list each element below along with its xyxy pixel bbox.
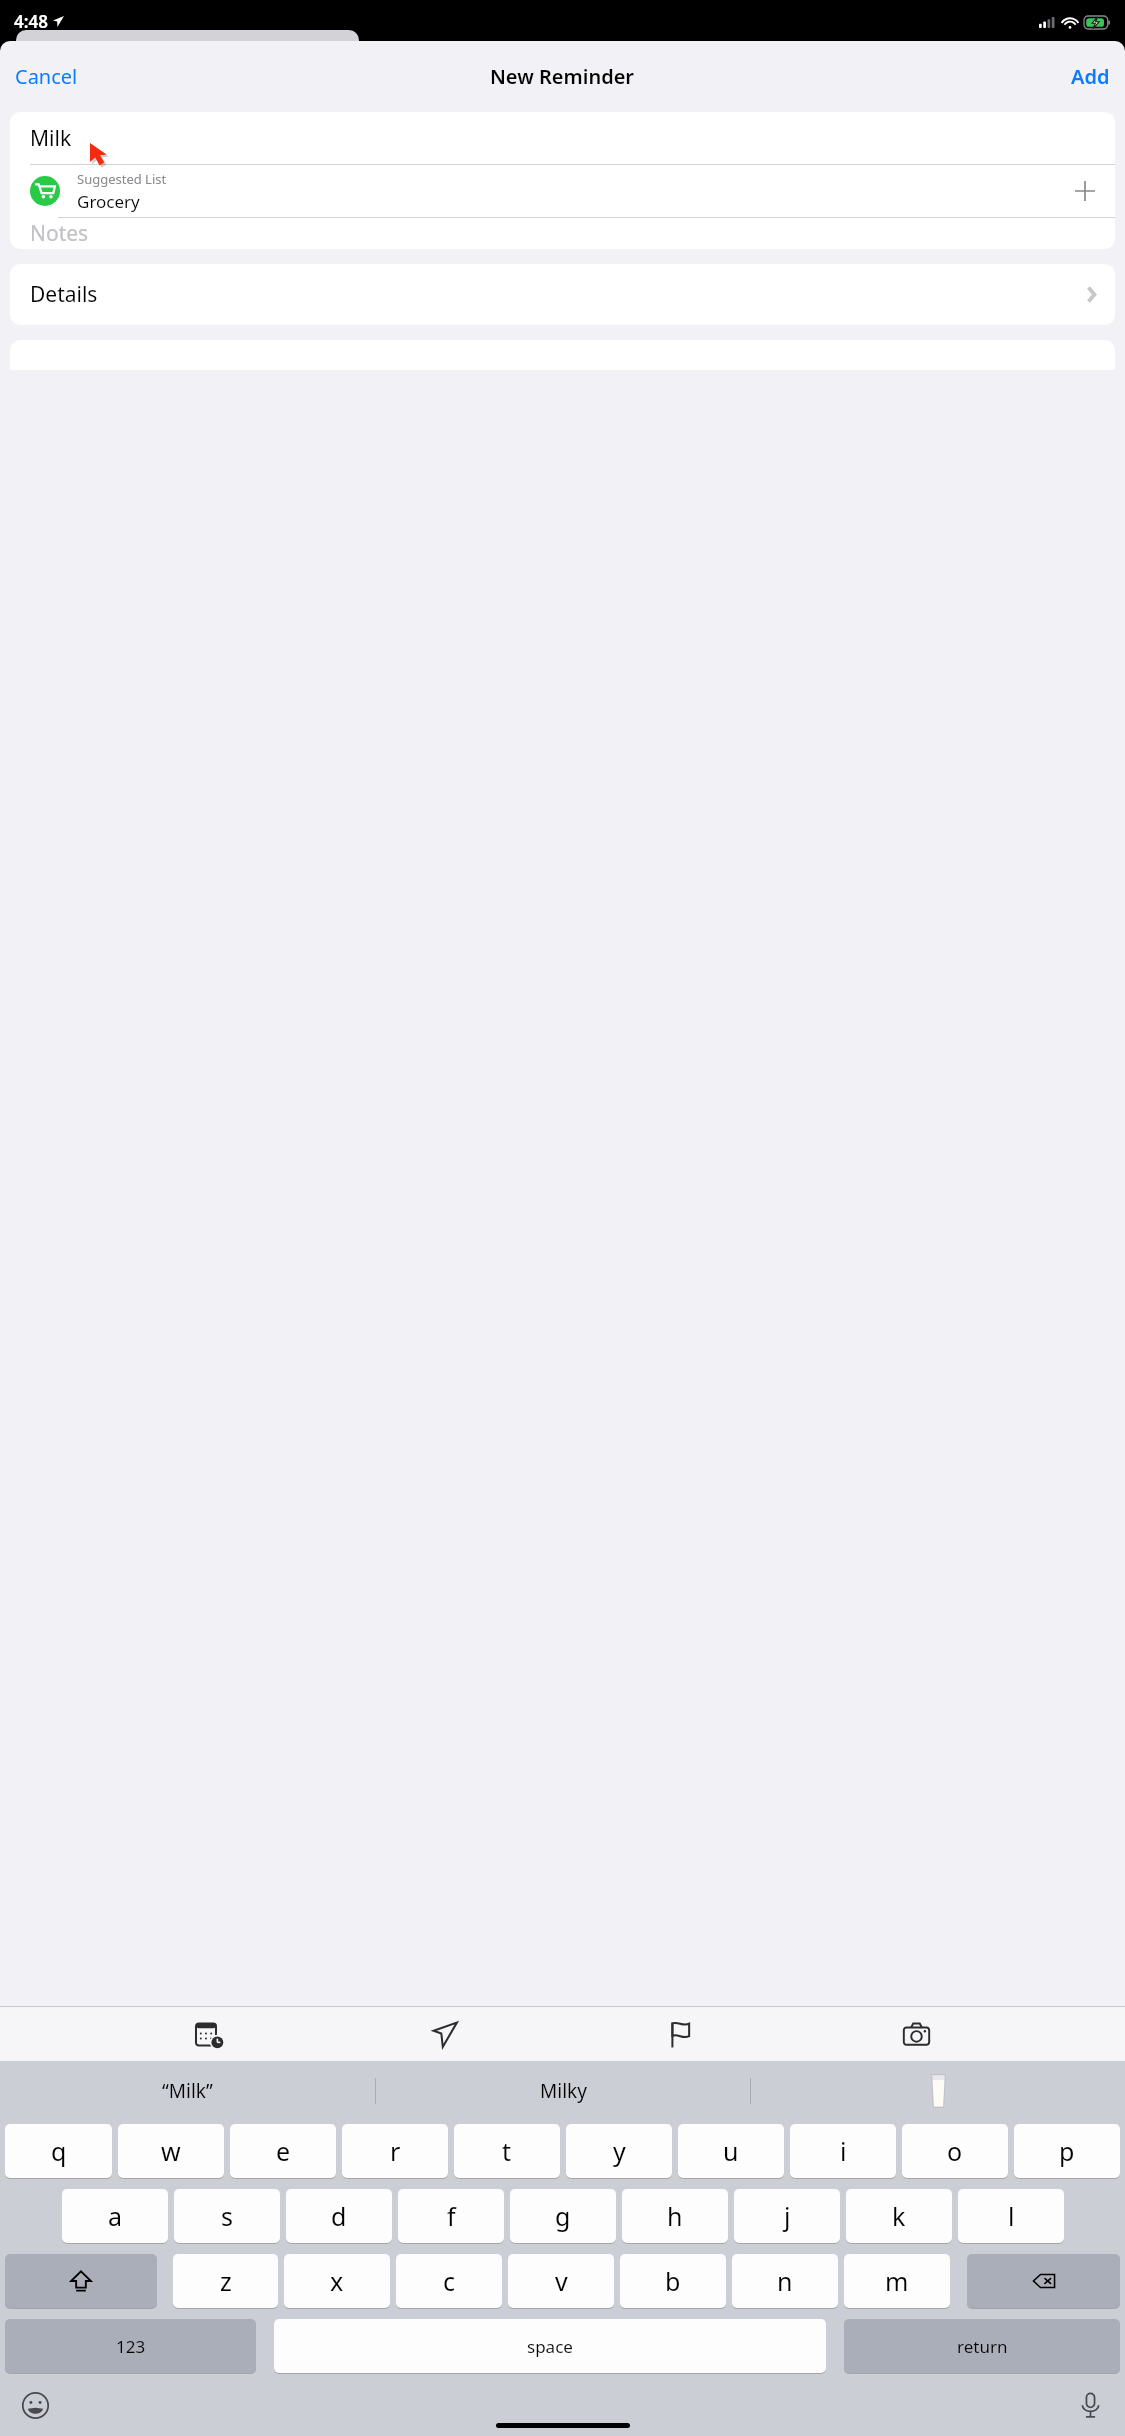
button[interactable]: g [510, 2189, 616, 2243]
button[interactable]: a [62, 2189, 168, 2243]
button[interactable]: x [284, 2254, 390, 2308]
button[interactable]: Remind me on a day [183, 2008, 235, 2060]
staticText: 123 [116, 2335, 146, 2358]
staticText: l [1008, 2199, 1015, 2233]
staticText: e [276, 2134, 291, 2168]
staticText: “Milk” [162, 2078, 213, 2104]
staticText: Suggested List [77, 170, 167, 188]
staticText: f [447, 2199, 456, 2233]
button[interactable]: z [173, 2254, 278, 2308]
staticText: n [777, 2264, 793, 2298]
staticText: Notes [30, 219, 89, 248]
staticText: x [330, 2264, 344, 2298]
staticText: k [892, 2199, 906, 2233]
staticText: v [555, 2264, 568, 2298]
staticText: New Reminder [490, 63, 635, 90]
staticText: Milky [540, 2078, 587, 2104]
staticText: t [502, 2134, 512, 2168]
staticText: s [221, 2199, 233, 2233]
button[interactable]: p [1014, 2124, 1120, 2178]
button[interactable]: u [678, 2124, 784, 2178]
staticText: c [443, 2264, 456, 2298]
button[interactable]: space [274, 2319, 826, 2373]
staticText: y [613, 2134, 626, 2168]
button[interactable]: “Milk” [0, 2061, 375, 2121]
staticText: 4:48 [14, 10, 48, 33]
button[interactable]: k [846, 2189, 952, 2243]
button[interactable]: e [230, 2124, 336, 2178]
button[interactable]: 123 [5, 2319, 256, 2373]
button[interactable]: v [508, 2254, 614, 2308]
button[interactable]: Cancel [6, 55, 87, 98]
staticText: o [947, 2134, 963, 2168]
staticText: return [957, 2335, 1008, 2358]
button[interactable]: q [5, 2124, 112, 2178]
staticText: z [220, 2264, 232, 2298]
button[interactable]: c [396, 2254, 502, 2308]
button[interactable]: Remind me at a location [419, 2008, 471, 2060]
button[interactable]: Glass of milk emoji [751, 2061, 1125, 2121]
button[interactable]: Milky [376, 2061, 750, 2121]
button[interactable]: o [902, 2124, 1008, 2178]
staticText: p [1059, 2134, 1075, 2168]
staticText: d [331, 2199, 347, 2233]
staticText: u [723, 2134, 739, 2168]
staticText: h [667, 2199, 683, 2233]
button[interactable]: Add suggested list [1063, 169, 1107, 213]
staticText: m [885, 2264, 909, 2298]
staticText: r [390, 2134, 401, 2168]
button[interactable]: Shift [5, 2254, 157, 2308]
staticText: w [161, 2134, 181, 2168]
staticText: g [555, 2199, 571, 2233]
button[interactable]: Add [1062, 55, 1119, 98]
button[interactable]: h [622, 2189, 728, 2243]
button[interactable]: Flag [654, 2008, 706, 2060]
button[interactable]: r [342, 2124, 448, 2178]
button[interactable]: l [958, 2189, 1064, 2243]
button[interactable]: w [118, 2124, 224, 2178]
staticText: a [108, 2199, 123, 2233]
button[interactable]: n [732, 2254, 838, 2308]
button[interactable]: return [844, 2319, 1120, 2373]
staticText: Details [30, 280, 98, 309]
staticText: Add [1071, 63, 1110, 90]
button[interactable]: i [790, 2124, 896, 2178]
button[interactable]: y [566, 2124, 672, 2178]
button[interactable]: j [734, 2189, 840, 2243]
button[interactable]: b [620, 2254, 726, 2308]
staticText: q [51, 2134, 67, 2168]
staticText: i [840, 2134, 847, 2168]
button[interactable]: f [398, 2189, 504, 2243]
button[interactable]: Emoji keyboard [13, 2383, 57, 2427]
staticText: j [784, 2199, 791, 2233]
button[interactable]: t [454, 2124, 560, 2178]
button[interactable]: d [286, 2189, 392, 2243]
button[interactable]: m [844, 2254, 950, 2308]
staticText: Grocery [77, 190, 140, 213]
button[interactable]: s [174, 2189, 280, 2243]
button[interactable]: Suggested List [10, 165, 1115, 217]
staticText: b [665, 2264, 681, 2298]
button[interactable]: Add photo [890, 2008, 942, 2060]
staticText: space [527, 2335, 573, 2358]
button[interactable]: Backspace [967, 2254, 1120, 2308]
button[interactable]: Details [10, 264, 1115, 325]
staticText: Cancel [15, 63, 78, 90]
staticText: Milk [30, 124, 72, 153]
button[interactable]: Dictation [1068, 2383, 1112, 2427]
